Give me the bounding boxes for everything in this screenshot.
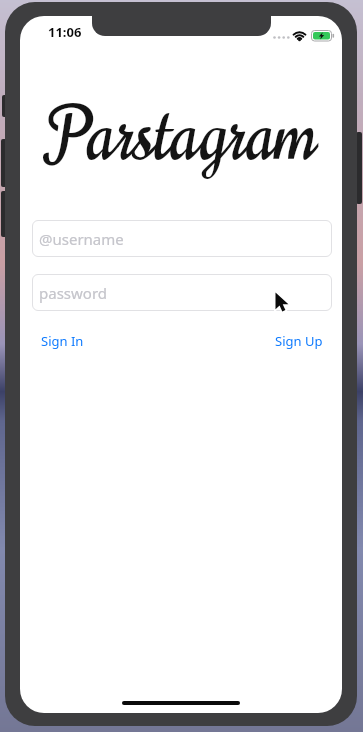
button[interactable]: Sign Up: [272, 328, 326, 354]
button[interactable]: Sign In: [36, 328, 88, 354]
staticText: @username: [39, 229, 124, 249]
staticText: 11:06: [48, 23, 82, 41]
staticText: Sign Up: [275, 332, 323, 350]
button[interactable]: @username: [32, 220, 332, 257]
staticText: Sign In: [41, 332, 84, 350]
staticText: Parstagram: [47, 82, 316, 188]
button[interactable]: password: [32, 274, 332, 311]
staticText: password: [39, 283, 107, 303]
